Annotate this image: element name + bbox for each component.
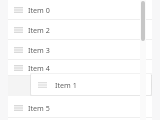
button[interactable]: Reorder Item 2 bbox=[8, 20, 152, 40]
other: Reorder Item 2 bbox=[14, 26, 23, 34]
other: Reorder Item 5 bbox=[14, 104, 23, 112]
other: Reorder Item 3 bbox=[14, 46, 23, 54]
other: Reorder Item 1 bbox=[38, 81, 47, 89]
staticText: Item 4 bbox=[28, 63, 50, 73]
staticText: Item 5 bbox=[28, 103, 50, 113]
staticText: Item 3 bbox=[28, 45, 50, 55]
button[interactable]: Reorder Item 3 bbox=[8, 40, 152, 60]
staticText: Item 1 bbox=[55, 80, 77, 90]
button[interactable]: Reorder Item 0 bbox=[8, 0, 152, 20]
button[interactable]: Reorder Item 1 bbox=[31, 74, 151, 95]
button[interactable]: Reorder Item 4 bbox=[8, 60, 152, 76]
other: Reorder Item 0 bbox=[14, 6, 23, 14]
other: Scroll position bbox=[141, 1, 145, 41]
other: Reorder Item 4 bbox=[14, 64, 23, 72]
staticText: Item 2 bbox=[28, 25, 50, 35]
button[interactable]: Reorder Item 5 bbox=[8, 98, 152, 118]
staticText: Item 0 bbox=[28, 5, 50, 15]
